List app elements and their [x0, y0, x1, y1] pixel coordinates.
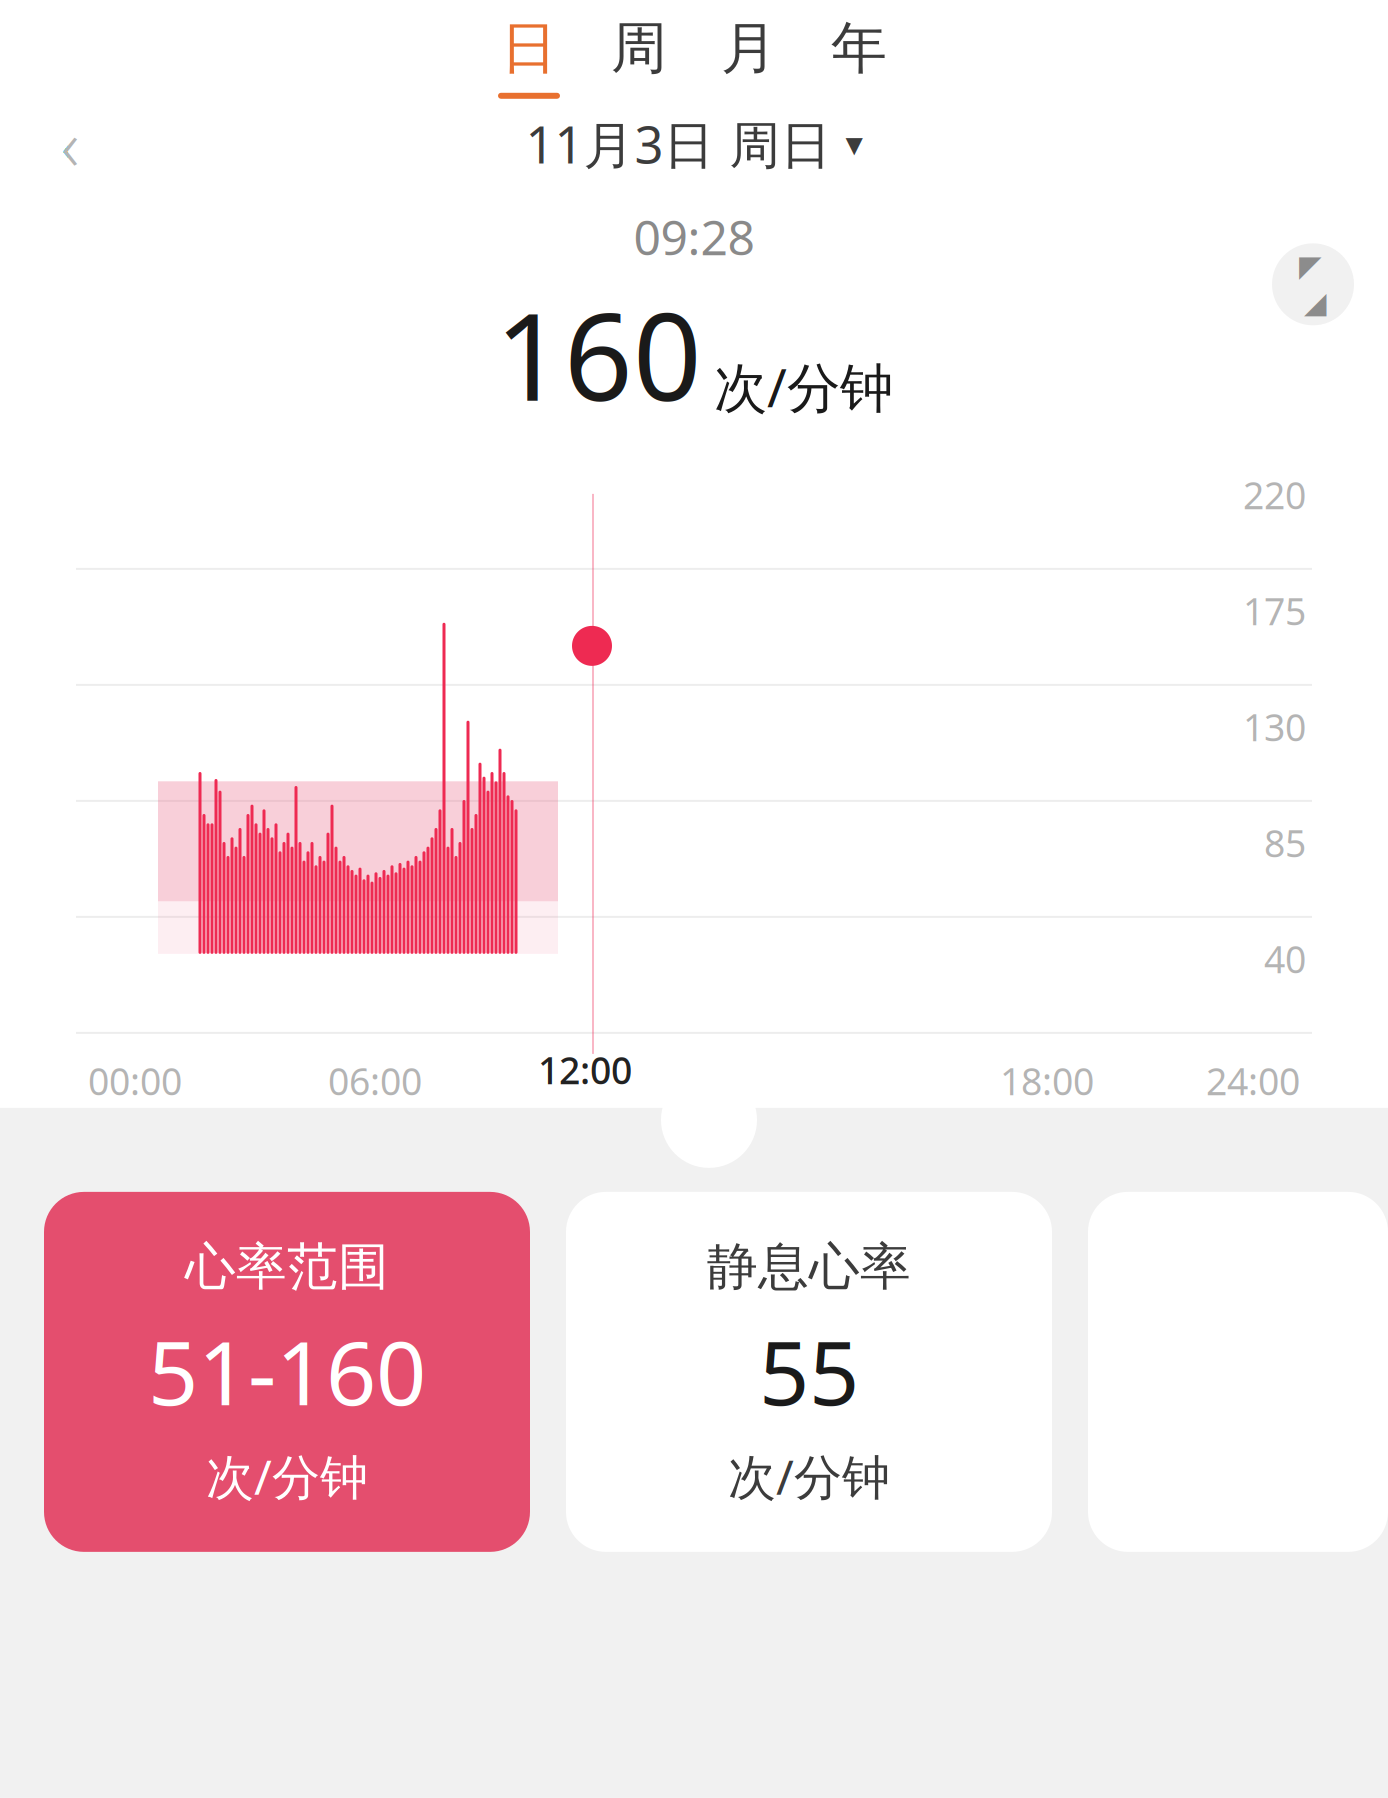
staticText: 175: [1243, 586, 1306, 636]
staticText: 00:00: [88, 1056, 182, 1106]
staticText: 24:00: [1206, 1056, 1300, 1106]
staticText: 月: [721, 14, 777, 83]
staticText: ▾: [845, 124, 862, 163]
staticText: 220: [1243, 470, 1306, 520]
staticText: ◤: [1299, 249, 1322, 283]
button[interactable]: 月: [694, 8, 804, 105]
staticText: 周: [611, 14, 667, 83]
button[interactable]: 心率范围: [44, 1192, 530, 1552]
staticText: 11月3日 周日: [525, 110, 831, 177]
button[interactable]: 日: [474, 8, 584, 105]
staticText: 85: [1264, 818, 1306, 868]
button[interactable]: 11月3日 周日: [511, 104, 876, 183]
button[interactable]: 周: [584, 8, 694, 105]
staticText: 日: [501, 14, 557, 83]
staticText: ‹: [61, 98, 79, 190]
staticText: 55: [759, 1313, 859, 1430]
button[interactable]: 上一天: [30, 109, 110, 179]
staticText: 130: [1243, 702, 1306, 752]
staticText: 51-160: [148, 1313, 426, 1430]
staticText: 40: [1264, 934, 1306, 984]
staticText: 06:00: [328, 1056, 422, 1106]
staticText: 18:00: [1000, 1056, 1094, 1106]
button[interactable]: 静息心率: [566, 1192, 1052, 1552]
staticText: ◢: [1304, 286, 1327, 319]
staticText: 12:00: [538, 1045, 632, 1095]
staticText: 次/分钟: [206, 1444, 368, 1508]
staticText: 次/分钟: [728, 1444, 890, 1508]
staticText: 次/分钟: [714, 351, 893, 422]
staticText: 年: [831, 14, 887, 83]
button[interactable]: 年: [804, 8, 914, 105]
button[interactable]: 全屏显示: [1272, 243, 1354, 325]
staticText: 160: [495, 274, 702, 434]
staticText: 静息心率: [707, 1236, 911, 1298]
staticText: 09:28: [633, 205, 754, 268]
staticText: 心率范围: [185, 1236, 389, 1298]
